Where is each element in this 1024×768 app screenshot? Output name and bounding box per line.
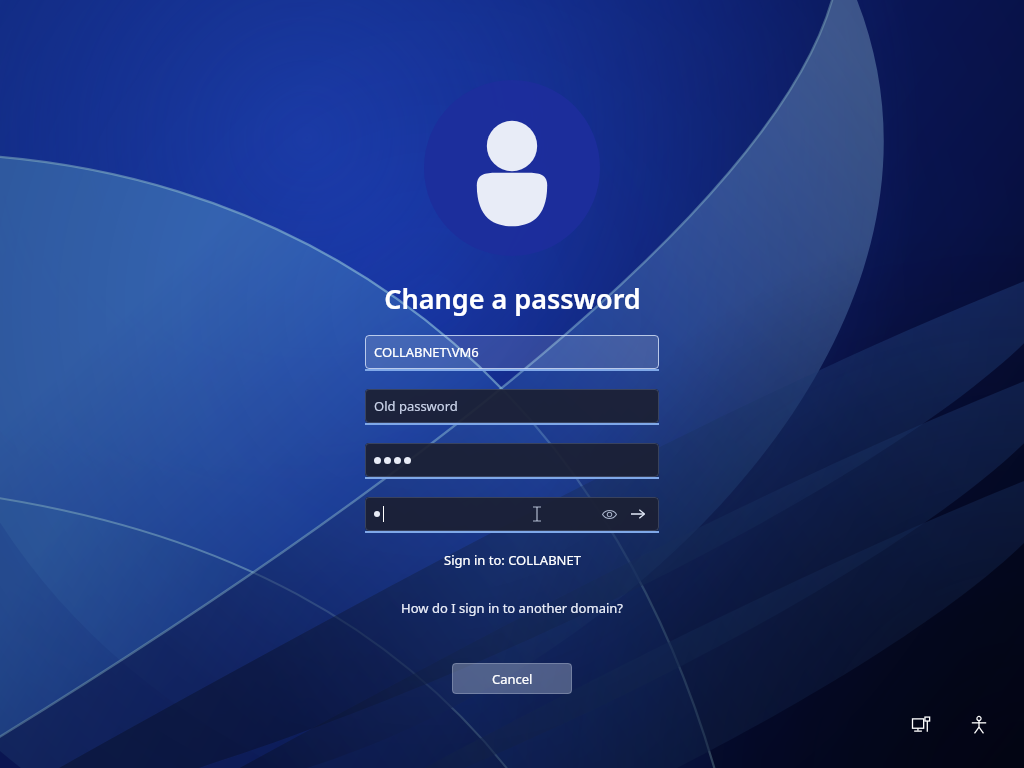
button[interactable]: COLLABNET\VM6 [365,335,659,369]
staticText: Cancel [492,670,533,688]
button[interactable]: Ease of access [964,710,994,740]
button[interactable]: How do I sign in to another domain? [395,597,629,619]
button[interactable]: Cancel [452,663,572,694]
staticText: How do I sign in to another domain? [401,599,623,617]
button[interactable]: Network [906,710,936,740]
staticText: Sign in to: COLLABNET [444,551,581,569]
button[interactable]: Show password [365,497,659,531]
button[interactable] [365,443,659,477]
button[interactable]: Old password [365,389,659,423]
staticText: COLLABNET\VM6 [374,343,479,361]
button[interactable]: Submit [626,502,650,526]
staticText: Change a password [384,280,641,317]
button[interactable]: Show password [598,503,620,525]
staticText: Old password [374,397,458,415]
